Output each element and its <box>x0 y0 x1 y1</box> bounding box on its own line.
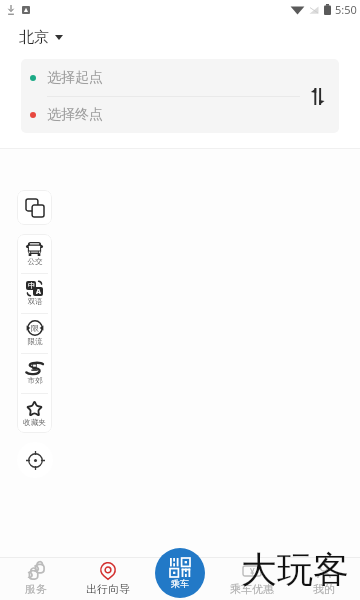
staticText: 市郊 <box>27 376 43 386</box>
button[interactable]: 收藏夹 <box>17 394 52 433</box>
staticText: 服务 <box>25 582 47 596</box>
staticText: 乘车优惠 <box>230 582 274 596</box>
button[interactable]: 市郊 <box>17 354 52 393</box>
button[interactable]: Swap start and destination <box>295 74 339 118</box>
button[interactable]: 北京 <box>19 28 69 47</box>
staticText: 5:50 <box>335 2 357 17</box>
staticText: 乘车 <box>171 578 189 589</box>
staticText: 收藏夹 <box>23 418 46 428</box>
button[interactable]: 出行向导 <box>72 558 144 600</box>
button[interactable]: 选择起点 <box>30 59 300 96</box>
staticText: 公交 <box>27 257 43 267</box>
button[interactable]: 乘车 <box>155 548 205 598</box>
button[interactable]: 中 <box>17 274 52 313</box>
staticText: 选择起点 <box>47 69 103 87</box>
button[interactable]: 服务 <box>0 558 72 600</box>
button[interactable]: ¥ <box>216 558 288 600</box>
button[interactable]: My location <box>17 442 53 478</box>
button[interactable]: 选择终点 <box>30 97 300 133</box>
button[interactable]: 限 <box>17 314 52 353</box>
button[interactable]: 我的 <box>288 558 360 600</box>
staticText: 北京 <box>19 28 49 47</box>
staticText: 限 <box>31 323 39 333</box>
staticText: 限流 <box>27 337 43 347</box>
staticText: 中 <box>28 281 35 290</box>
button[interactable]: Map layers <box>17 190 52 225</box>
staticText: 双语 <box>27 297 43 307</box>
staticText: A <box>36 287 41 296</box>
staticText: 我的 <box>313 582 335 596</box>
staticText: ¥ <box>250 566 255 577</box>
staticText: 出行向导 <box>86 582 130 596</box>
staticText: 选择终点 <box>47 106 103 124</box>
staticText: 大玩客 <box>241 547 349 592</box>
button[interactable]: 公交 <box>17 234 52 273</box>
